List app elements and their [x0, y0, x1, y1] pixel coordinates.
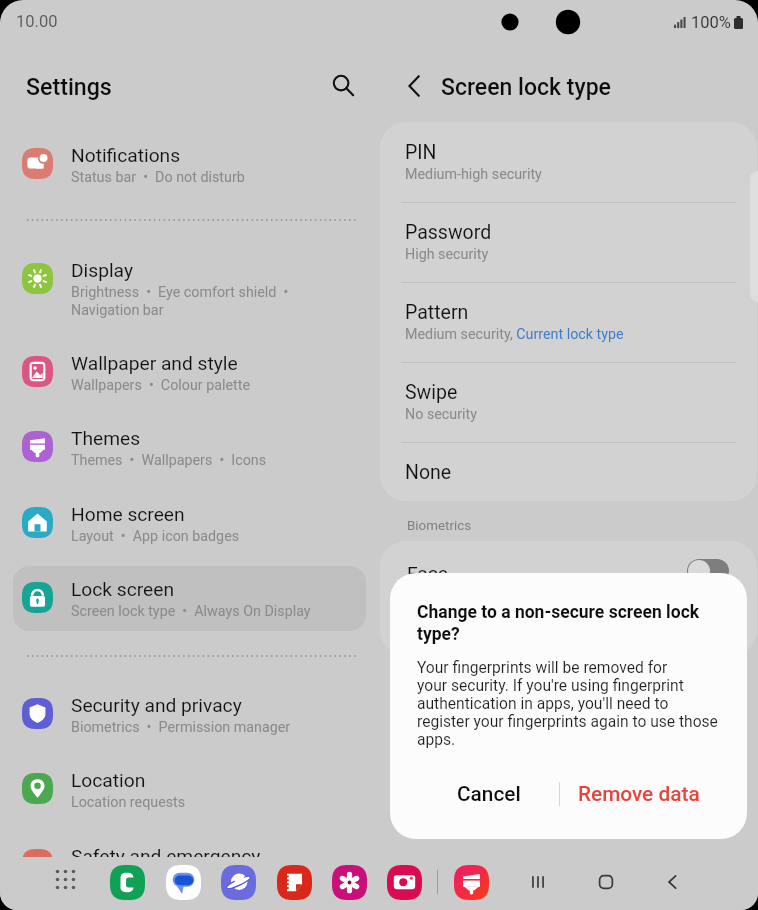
- staticText: Lock screen: [71, 578, 175, 601]
- button[interactable]: Back: [651, 860, 695, 904]
- staticText: None: [405, 461, 452, 484]
- staticText: Status bar • Do not disturb: [71, 169, 245, 186]
- staticText: Face: [407, 562, 448, 585]
- button[interactable]: All apps: [52, 866, 78, 892]
- button[interactable]: PIN: [380, 126, 757, 186]
- staticText: 100%: [691, 13, 731, 32]
- button[interactable]: Face unlock toggle: [687, 559, 729, 583]
- staticText: Remove data: [578, 782, 700, 806]
- button[interactable]: Password: [380, 206, 757, 266]
- staticText: Biometrics: [407, 518, 472, 534]
- button[interactable]: Remove data: [560, 766, 718, 822]
- button[interactable]: Lock screen: [13, 564, 366, 629]
- staticText: Wallpaper and style: [71, 352, 238, 375]
- button[interactable]: Home: [584, 860, 628, 904]
- staticText: Security and privacy: [71, 694, 242, 717]
- button[interactable]: None: [380, 446, 757, 488]
- button[interactable]: Themes: [454, 865, 489, 900]
- staticText: Medium security, Current lock type: [405, 326, 624, 343]
- button[interactable]: Gallery: [332, 865, 367, 900]
- staticText: Location: [71, 769, 146, 792]
- staticText: Notifications: [71, 144, 181, 167]
- button[interactable]: Camera: [387, 865, 422, 900]
- staticText: Display: [71, 259, 133, 282]
- button[interactable]: Search: [325, 67, 361, 103]
- button[interactable]: Wallpaper and style: [13, 338, 366, 403]
- staticText: Swipe: [405, 381, 458, 404]
- button[interactable]: Messages: [166, 865, 201, 900]
- button[interactable]: Notes: [277, 865, 312, 900]
- staticText: Your fingerprints will be removed for yo…: [417, 659, 718, 749]
- staticText: 10.00: [16, 12, 58, 31]
- button[interactable]: Themes: [13, 413, 366, 478]
- staticText: Change to a non-secure screen lock type?: [417, 602, 700, 645]
- button[interactable]: Recents: [516, 860, 560, 904]
- staticText: Wallpapers • Colour palette: [71, 377, 250, 394]
- staticText: Safety and emergency: [71, 845, 261, 868]
- staticText: Cancel: [457, 782, 521, 806]
- staticText: Themes • Wallpapers • Icons: [71, 452, 267, 469]
- staticText: Themes: [71, 427, 141, 450]
- button[interactable]: Safety and emergency: [13, 831, 366, 896]
- staticText: Pattern: [405, 301, 469, 324]
- button[interactable]: Internet: [221, 865, 256, 900]
- button[interactable]: Location: [13, 755, 366, 820]
- button[interactable]: Phone: [110, 865, 145, 900]
- staticText: Settings: [26, 73, 112, 100]
- button[interactable]: Notifications: [13, 130, 366, 195]
- button[interactable]: Security and privacy: [13, 680, 366, 745]
- staticText: Biometrics • Permission manager: [71, 719, 291, 736]
- staticText: No security: [405, 406, 477, 423]
- button[interactable]: Display: [13, 245, 366, 310]
- staticText: Brightness • Eye comfort shield • Naviga…: [71, 284, 289, 318]
- staticText: High security: [405, 246, 489, 263]
- staticText: Location requests: [71, 794, 186, 811]
- staticText: Layout • App icon badges: [71, 528, 240, 545]
- staticText: Screen lock type: [441, 74, 611, 101]
- button[interactable]: Navigate up: [396, 68, 432, 104]
- button[interactable]: Swipe: [380, 366, 757, 426]
- staticText: Password: [405, 221, 492, 244]
- button[interactable]: Cancel: [409, 766, 568, 822]
- staticText: Medium-high security: [405, 166, 542, 183]
- staticText: Home screen: [71, 503, 185, 526]
- button[interactable]: Home screen: [13, 489, 366, 554]
- button[interactable]: Pattern: [380, 286, 757, 346]
- staticText: Screen lock type • Always On Display: [71, 603, 311, 620]
- staticText: PIN: [405, 141, 437, 164]
